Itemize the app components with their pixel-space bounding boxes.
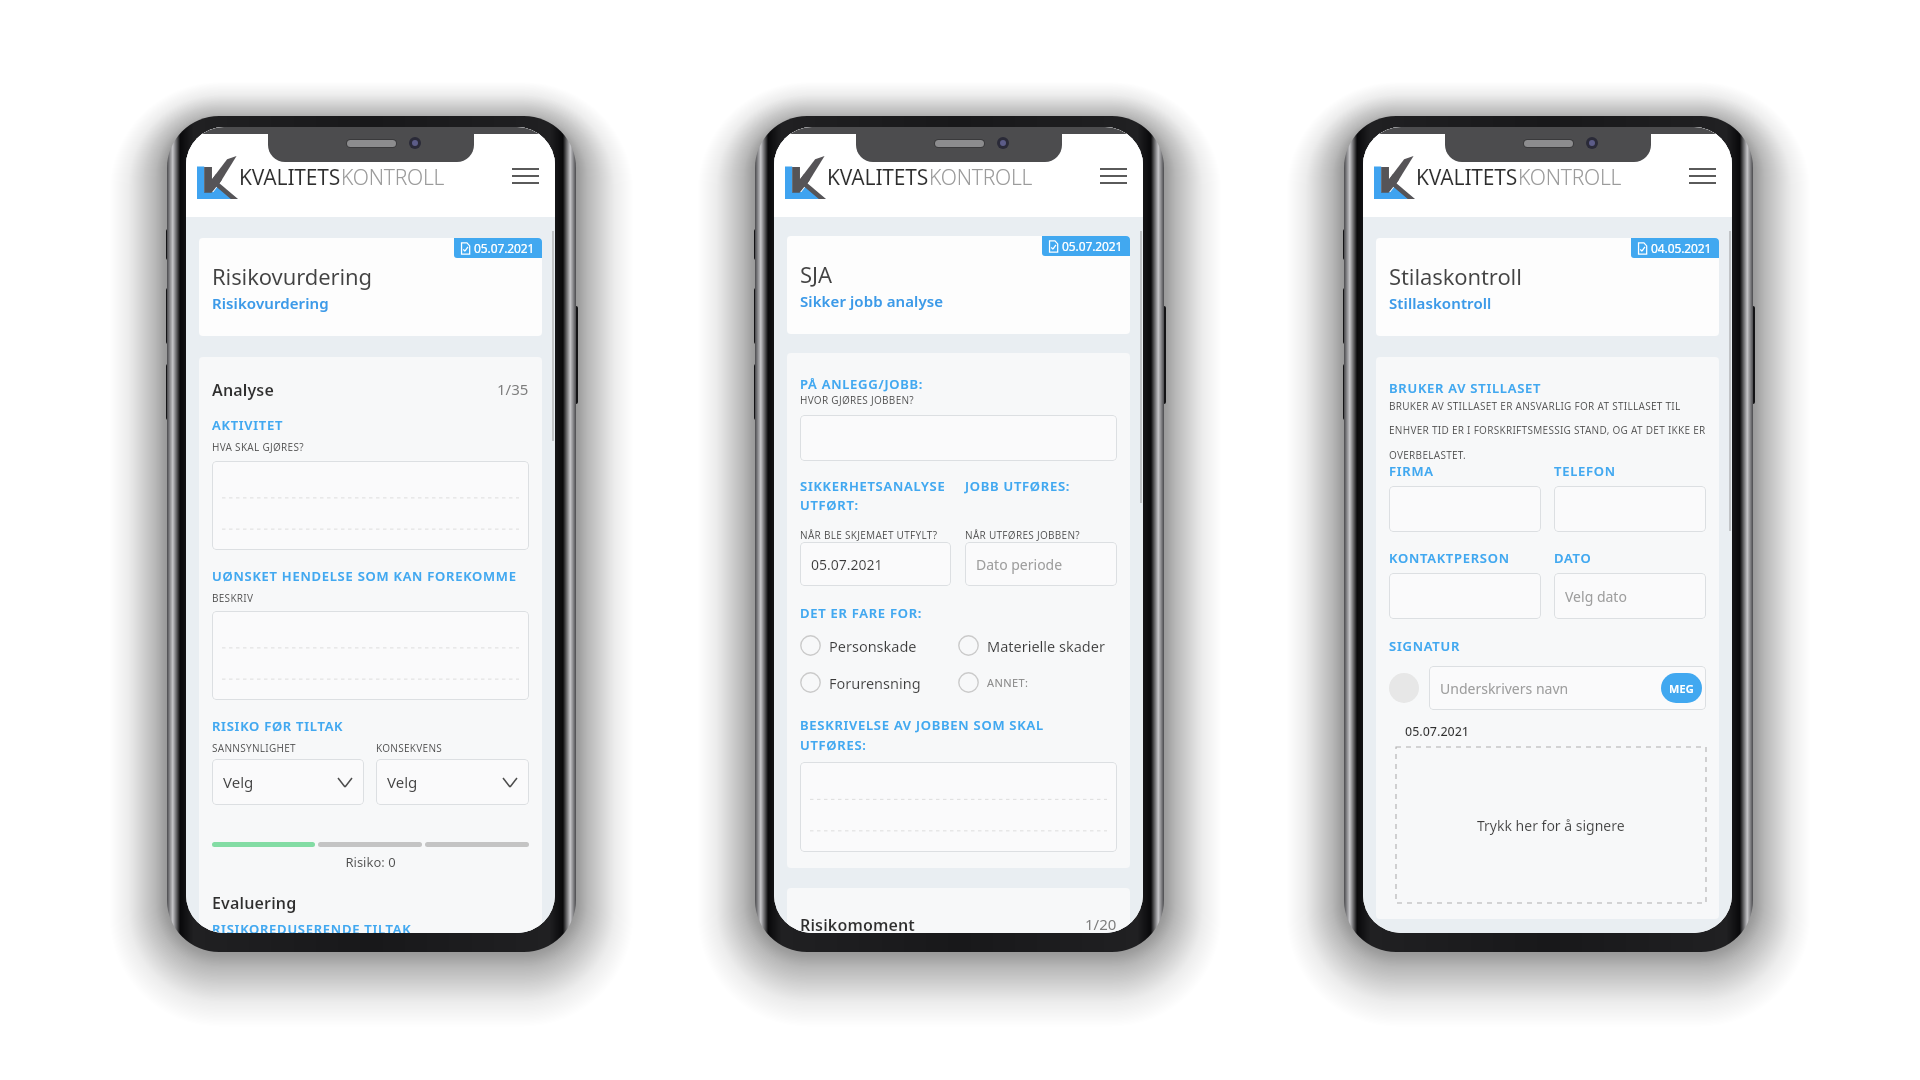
staticText: KVALITETS — [1416, 163, 1518, 192]
staticText: Materielle skader — [987, 636, 1105, 656]
staticText: RISIKOREDUSERENDE TILTAK — [212, 920, 412, 933]
staticText: Trykk her for å signere — [1477, 816, 1625, 835]
button[interactable]: Velg dato — [1554, 573, 1706, 619]
button[interactable]: Velg — [376, 759, 529, 805]
staticText: FIRMA — [1389, 462, 1434, 480]
staticText: KONTROLL — [1518, 163, 1622, 192]
button[interactable]: Underskrivers navn — [1429, 666, 1706, 710]
staticText: BRUKER AV STILLASET — [1389, 379, 1542, 397]
staticText: Risikomoment — [800, 914, 915, 933]
button[interactable]: 05.07.2021 — [800, 542, 951, 586]
staticText: KONTAKTPERSON — [1389, 549, 1510, 567]
staticText: HVA SKAL GJØRES? — [212, 440, 304, 454]
staticText: BESKRIV — [212, 591, 254, 605]
staticText: 05.07.2021 — [1062, 238, 1123, 254]
staticText: BRUKER AV STILLASET ER ANSVARLIG FOR AT … — [1389, 399, 1706, 462]
button[interactable]: Forurensning — [800, 672, 958, 693]
staticText: PÅ ANLEGG/JOBB: — [800, 375, 924, 393]
staticText: RISIKO FØR TILTAK — [212, 717, 344, 735]
staticText: Underskrivers navn — [1440, 679, 1569, 698]
button[interactable] — [800, 762, 1117, 852]
button[interactable]: Open navigation menu — [1685, 159, 1719, 193]
staticText: 1/35 — [497, 379, 529, 399]
staticText: Velg dato — [1565, 587, 1627, 606]
staticText: 05.07.2021 — [811, 555, 883, 574]
button[interactable]: Open navigation menu — [1096, 159, 1130, 193]
staticText: KONTROLL — [929, 163, 1033, 192]
button[interactable]: MEG — [1661, 673, 1702, 703]
button[interactable]: 05.07.2021 — [460, 240, 535, 256]
staticText: Stillaskontroll — [1389, 293, 1492, 313]
staticText: Velg — [387, 772, 418, 792]
staticText: KONSEKVENS — [376, 741, 443, 755]
staticText: Sikker jobb analyse — [800, 291, 944, 311]
staticText: Risikovurdering — [212, 293, 329, 313]
staticText: Velg — [223, 772, 254, 792]
staticText: Evaluering — [212, 892, 297, 914]
staticText: DET ER FARE FOR: — [800, 604, 923, 622]
staticText: NÅR UTFØRES JOBBEN? — [965, 528, 1080, 542]
staticText: Personskade — [829, 636, 917, 656]
button[interactable] — [1389, 486, 1541, 532]
button[interactable] — [1554, 486, 1706, 532]
staticText: 04.05.2021 — [1651, 240, 1712, 256]
button[interactable]: Dato periode — [965, 542, 1117, 586]
staticText: Forurensning — [829, 673, 921, 693]
staticText: SIGNATUR — [1389, 637, 1461, 655]
staticText: KVALITETS — [827, 163, 929, 192]
button[interactable]: 04.05.2021 — [1637, 240, 1712, 256]
button[interactable]: 05.07.2021 — [1048, 238, 1123, 254]
staticText: Stilaskontroll — [1389, 261, 1522, 291]
button[interactable]: Trykk her for å signere — [1396, 747, 1706, 903]
staticText: Dato periode — [976, 555, 1063, 574]
staticText: Risiko: 0 — [212, 853, 529, 871]
staticText: KVALITETS — [239, 163, 341, 192]
staticText: SANNSYNLIGHET — [212, 741, 296, 755]
staticText: MEG — [1669, 681, 1694, 696]
staticText: JOBB UTFØRES: — [965, 477, 1071, 495]
button[interactable] — [800, 415, 1117, 461]
staticText: TELEFON — [1554, 462, 1616, 480]
staticText: DATO — [1554, 549, 1592, 567]
button[interactable]: Materielle skader — [958, 635, 1117, 656]
button[interactable] — [1389, 573, 1541, 619]
staticText: 05.07.2021 — [1405, 723, 1470, 740]
staticText: UØNSKET HENDELSE SOM KAN FOREKOMME — [212, 567, 517, 585]
staticText: Risikovurdering — [212, 261, 372, 291]
staticText: AKTIVITET — [212, 416, 284, 434]
button[interactable] — [212, 611, 529, 700]
button[interactable]: Personskade — [800, 635, 958, 656]
staticText: HVOR GJØRES JOBBEN? — [800, 393, 914, 407]
button[interactable]: Open navigation menu — [508, 159, 542, 193]
staticText: KONTROLL — [341, 163, 445, 192]
staticText: BESKRIVELSE AV JOBBEN SOM SKAL UTFØRES: — [800, 716, 1044, 754]
button[interactable] — [212, 461, 529, 550]
staticText: 05.07.2021 — [474, 240, 535, 256]
staticText: NÅR BLE SKJEMAET UTFYLT? — [800, 528, 938, 542]
staticText: 1/20 — [1085, 914, 1117, 933]
staticText: Analyse — [212, 379, 274, 401]
staticText: SIKKERHETSANALYSE UTFØRT: — [800, 477, 946, 514]
button[interactable]: ANNET: — [958, 672, 1117, 693]
staticText: SJA — [800, 259, 832, 289]
button[interactable]: Velg — [212, 759, 364, 805]
staticText: ANNET: — [987, 675, 1029, 690]
